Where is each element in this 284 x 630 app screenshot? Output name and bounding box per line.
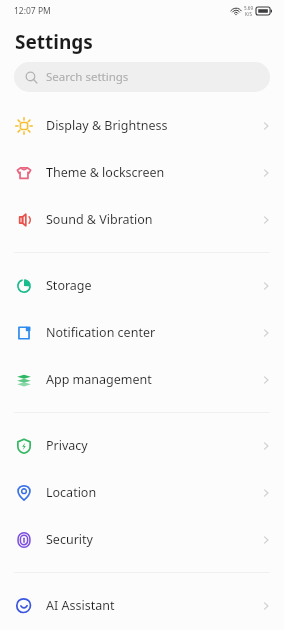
button[interactable]: Display & Brightness [0, 102, 284, 149]
staticText: 5.69 [244, 5, 253, 11]
button[interactable]: AI Assistant [0, 582, 284, 629]
staticText: App management [46, 371, 152, 388]
staticText: Settings [15, 29, 93, 55]
button[interactable]: Search settings [14, 62, 270, 92]
staticText: Sound & Vibration [46, 211, 153, 228]
button[interactable]: Security [0, 516, 284, 563]
staticText: Privacy [46, 437, 88, 454]
button[interactable]: Sound & Vibration [0, 196, 284, 243]
staticText: Theme & lockscreen [46, 164, 165, 181]
staticText: AI Assistant [46, 597, 115, 614]
staticText: Security [46, 531, 93, 548]
button[interactable]: Theme & lockscreen [0, 149, 284, 196]
button[interactable]: Privacy [0, 422, 284, 469]
staticText: Search settings [46, 69, 129, 85]
button[interactable]: Notification center [0, 309, 284, 356]
staticText: Location [46, 484, 97, 501]
staticText: Notification center [46, 324, 156, 341]
staticText: Display & Brightness [46, 117, 168, 134]
button[interactable]: App management [0, 356, 284, 403]
button[interactable]: Storage [0, 262, 284, 309]
staticText: Storage [46, 277, 92, 294]
button[interactable]: Location [0, 469, 284, 516]
staticText: 12:07 PM [14, 5, 51, 17]
staticText: K/S [245, 11, 252, 17]
